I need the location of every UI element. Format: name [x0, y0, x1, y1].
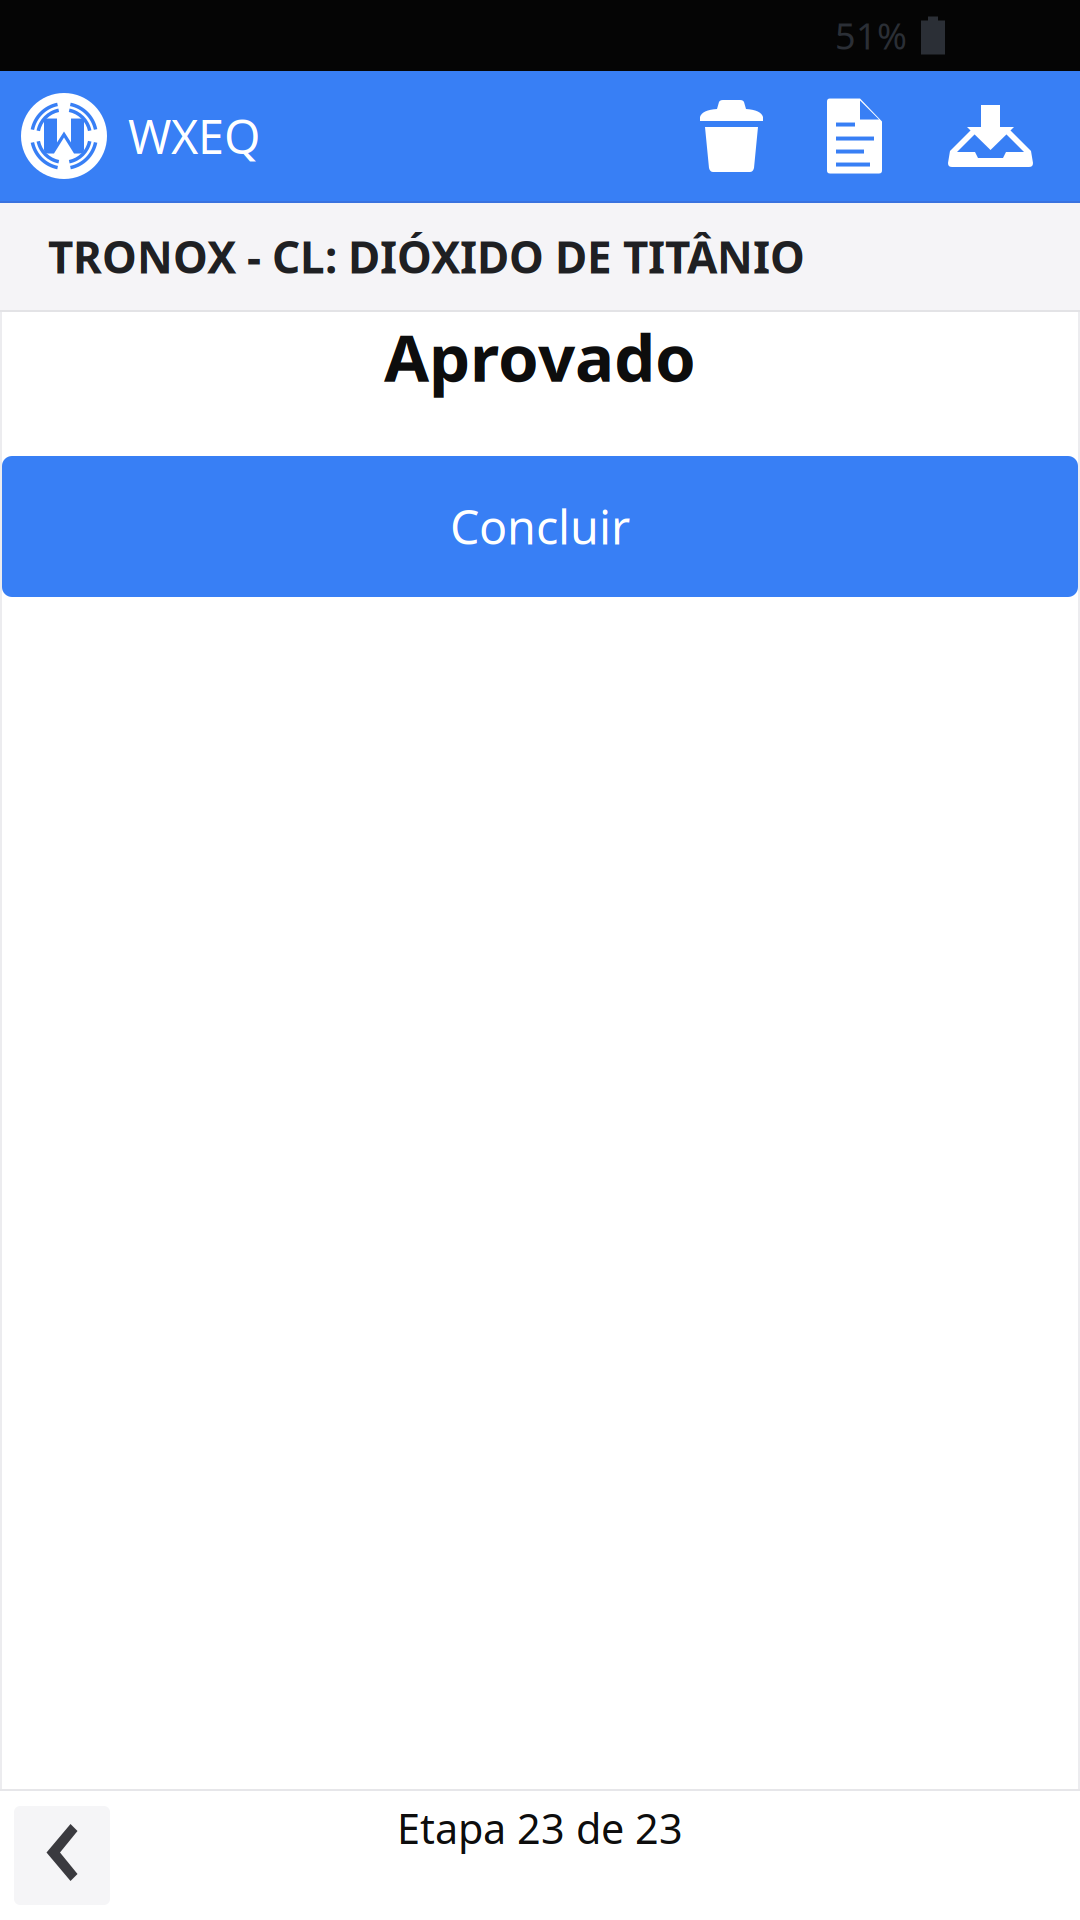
button[interactable]: Concluir [2, 456, 1078, 597]
staticText: TRONOX - CL: DIÓXIDO DE TITÂNIO [48, 227, 805, 286]
button[interactable]: Download [916, 71, 1065, 201]
button[interactable]: Document [793, 71, 916, 201]
staticText: Concluir [450, 495, 630, 557]
staticText: WXEQ [128, 105, 260, 167]
staticText: Aprovado [384, 313, 696, 400]
button[interactable]: Delete [670, 71, 793, 201]
staticText: Etapa 23 de 23 [397, 1801, 683, 1855]
staticText: 51% [835, 12, 907, 59]
button[interactable]: Back [14, 1806, 110, 1905]
